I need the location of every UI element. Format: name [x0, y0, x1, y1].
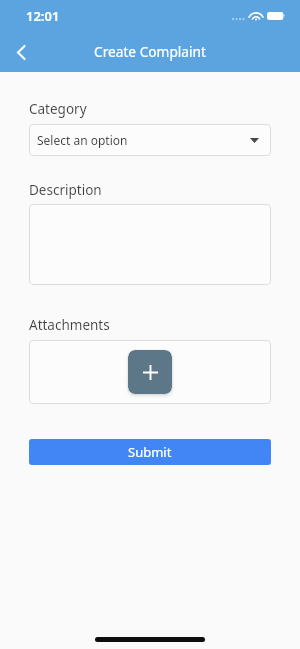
button[interactable]: Add attachment	[128, 350, 172, 394]
staticText: 12:01	[26, 7, 60, 25]
button[interactable]: Back	[5, 36, 37, 68]
staticText: Submit	[128, 443, 172, 461]
staticText: Select an option	[37, 132, 128, 148]
button[interactable]: Submit	[29, 439, 271, 465]
button[interactable]	[29, 204, 271, 285]
staticText: Description	[29, 181, 102, 199]
staticText: Attachments	[29, 316, 110, 334]
button[interactable]: Select an option	[29, 124, 271, 156]
staticText: Create Complaint	[94, 42, 206, 61]
staticText: Category	[29, 100, 87, 118]
